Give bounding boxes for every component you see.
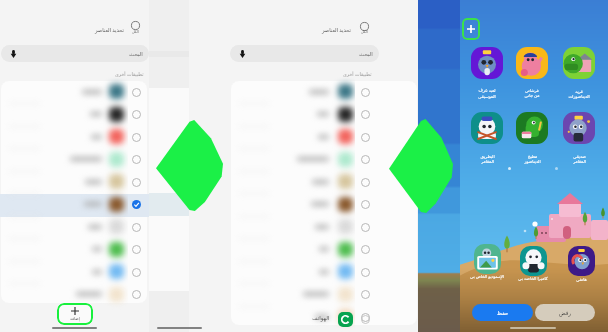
button[interactable]: البطريق المغامر	[467, 112, 507, 164]
staticText: البحث	[129, 51, 143, 57]
button[interactable]: Select item	[127, 150, 145, 168]
button[interactable]: كاميرا الخاصة بي	[512, 246, 554, 282]
staticText: الهواتف	[312, 315, 330, 321]
button[interactable]: Select item	[127, 263, 145, 281]
staticText: تطبيقات أخرى	[343, 71, 372, 78]
staticText: رفض	[559, 310, 572, 316]
staticText: قرية الديناصورات	[568, 89, 590, 99]
button[interactable]: Select item	[356, 173, 374, 191]
button[interactable]: Select item	[356, 308, 374, 326]
button[interactable]: Select item	[127, 195, 145, 213]
button[interactable]: رفض	[535, 304, 595, 321]
button[interactable]: Select item	[127, 173, 145, 191]
button[interactable]: Select item	[356, 83, 374, 101]
staticText: حفظ	[497, 310, 509, 316]
staticText: لعبة عزف الموسيقى	[478, 88, 496, 99]
button[interactable]: Select all	[356, 18, 373, 35]
button[interactable]: Select item	[356, 218, 374, 236]
button[interactable]: لعبة عزف الموسيقى	[467, 47, 507, 99]
button[interactable]: Select item	[356, 263, 374, 281]
button[interactable]: Select item	[356, 285, 374, 303]
button[interactable]: البحث	[1, 45, 149, 62]
button[interactable]: Phone app	[338, 312, 353, 327]
button[interactable]: إضافة	[57, 303, 93, 325]
staticText: الكل	[132, 30, 139, 34]
staticText: تطبيقات أخرى	[115, 71, 144, 78]
button[interactable]: Select item	[127, 285, 145, 303]
staticText: هاتفي	[576, 277, 587, 282]
staticText: الإستوديو الخاص بي	[470, 274, 504, 280]
button[interactable]: هاتفي	[560, 246, 602, 282]
button[interactable]: Select item	[127, 105, 145, 123]
button[interactable]: صديقي المغامر	[559, 112, 599, 164]
staticText: تحديد العناصر	[95, 26, 124, 33]
button[interactable]: Select item	[356, 240, 374, 258]
button[interactable]: مطبخ الديناصور	[512, 112, 552, 164]
staticText: صديقي المغامر	[573, 154, 586, 164]
staticText: الكل	[361, 30, 368, 34]
button[interactable]: Add app	[462, 18, 480, 40]
button[interactable]: Select item	[127, 240, 145, 258]
button[interactable]: الإستوديو الخاص بي	[466, 244, 508, 280]
button[interactable]: Select item	[127, 128, 145, 146]
button[interactable]: Select item	[127, 218, 145, 236]
button[interactable]: حفظ	[472, 304, 533, 321]
button[interactable]: البحث	[230, 45, 379, 62]
staticText: مطبخ الديناصور	[524, 154, 541, 164]
staticText: البحث	[359, 51, 373, 57]
button[interactable]: Select item	[127, 83, 145, 101]
button[interactable]: Select item	[356, 105, 374, 123]
button[interactable]: Select item	[356, 128, 374, 146]
button[interactable]: Select item	[356, 150, 374, 168]
button[interactable]: فرشاتي من جاني	[512, 47, 552, 99]
button[interactable]: قرية الديناصورات	[559, 47, 599, 99]
staticText: كاميرا الخاصة بي	[518, 276, 548, 282]
staticText: البطريق المغامر	[480, 154, 495, 164]
button[interactable]: Select item	[356, 195, 374, 213]
staticText: تحديد العناصر	[322, 26, 351, 33]
button[interactable]: Select all	[127, 17, 144, 34]
staticText: إضافة	[70, 316, 80, 321]
staticText: فرشاتي من جاني	[524, 88, 540, 99]
